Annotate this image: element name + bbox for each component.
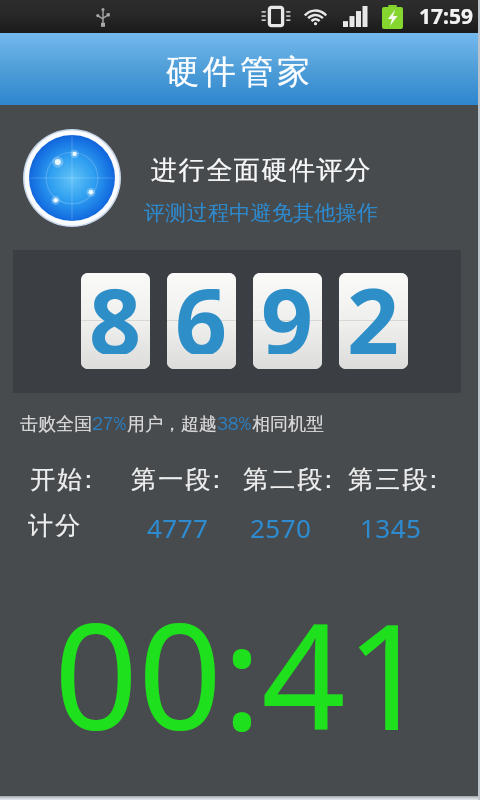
staticText: 9 — [261, 273, 314, 354]
staticText: 开始: — [30, 464, 95, 495]
button[interactable]: Start full hardware benchmark — [0, 105, 480, 250]
staticText: 评测过程中避免其他操作 — [144, 200, 379, 226]
staticText: 1345 — [360, 510, 422, 545]
button[interactable]: Total score 8692 — [13, 250, 461, 393]
staticText: 8 — [89, 273, 142, 354]
staticText: 第一段: — [131, 464, 223, 495]
staticText: 00:41 — [54, 573, 430, 773]
staticText: 进行全面硬件评分 — [151, 154, 372, 187]
staticText: 计分 — [28, 510, 83, 541]
button[interactable]: Start full hardware benchmark — [21, 127, 123, 229]
staticText: 相同机型 — [252, 413, 324, 436]
staticText: 6 — [175, 273, 228, 354]
staticText: 2 — [347, 273, 400, 354]
button[interactable]: 硬件管家 — [0, 33, 480, 105]
other: USB connected — [93, 7, 113, 27]
staticText: 38% — [217, 413, 252, 436]
button[interactable]: Elapsed time 00:41 — [0, 545, 480, 745]
staticText: 硬件管家 — [164, 51, 312, 93]
staticText: 击败全国 — [20, 413, 92, 436]
staticText: 2570 — [250, 510, 312, 545]
staticText: 4777 — [147, 510, 209, 545]
staticText: 17:59 — [419, 2, 473, 31]
staticText: 27% — [92, 413, 127, 436]
staticText: 用户，超越 — [127, 413, 217, 436]
staticText: 第三段: — [348, 464, 440, 495]
staticText: 第二段: — [243, 464, 335, 495]
